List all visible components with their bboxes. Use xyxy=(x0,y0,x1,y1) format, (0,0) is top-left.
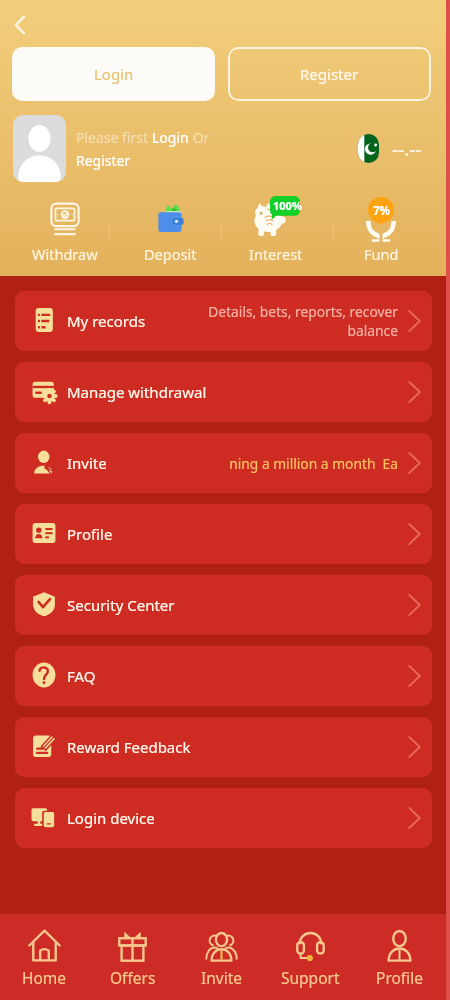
staticText: 7% xyxy=(373,203,390,219)
button[interactable]: Invite xyxy=(15,433,432,493)
button[interactable]: Home xyxy=(0,929,88,1000)
button[interactable]: Reward Feedback xyxy=(15,717,432,777)
staticText: Or xyxy=(189,128,210,147)
button[interactable]: Invite xyxy=(177,929,266,1000)
staticText: Fund xyxy=(364,244,399,264)
staticText: 100% xyxy=(273,198,302,213)
staticText: Interest xyxy=(249,244,303,264)
button[interactable]: Register xyxy=(228,47,431,101)
staticText: Withdraw xyxy=(32,244,98,264)
button[interactable]: Currency xyxy=(358,134,379,163)
button[interactable]: Withdraw xyxy=(24,196,106,264)
button[interactable]: Back xyxy=(6,10,36,40)
staticText: Details, bets, reports, recover balance xyxy=(193,302,398,340)
staticText: My records xyxy=(67,311,146,331)
staticText: Deposit xyxy=(144,244,197,264)
staticText: Login xyxy=(94,64,134,84)
staticText: Manage withdrawal xyxy=(67,382,207,402)
button[interactable]: My records xyxy=(15,291,432,351)
staticText: Offers xyxy=(110,967,156,988)
button[interactable]: 7% xyxy=(340,196,422,264)
staticText: Reward Feedback xyxy=(67,737,191,757)
staticText: Invite xyxy=(201,967,243,988)
button[interactable]: Manage withdrawal xyxy=(15,362,432,422)
staticText: Security Center xyxy=(67,595,175,615)
staticText: Profile xyxy=(67,524,113,544)
button[interactable]: Avatar xyxy=(13,115,66,182)
button[interactable]: Profile xyxy=(15,504,432,564)
button[interactable]: Login xyxy=(12,47,215,101)
staticText: FAQ xyxy=(67,666,96,686)
staticText: Login xyxy=(152,128,189,147)
staticText: ning a million a month Ea xyxy=(226,454,398,473)
staticText: Home xyxy=(22,967,67,988)
staticText: Register xyxy=(300,64,359,84)
button[interactable]: Profile xyxy=(355,929,444,1000)
button[interactable]: FAQ xyxy=(15,646,432,706)
staticText: Register xyxy=(76,151,131,170)
staticText: Login device xyxy=(67,808,155,828)
staticText: Please first xyxy=(76,128,152,147)
button[interactable]: 100% xyxy=(235,196,317,264)
button[interactable]: Login device xyxy=(15,788,432,848)
staticText: Profile xyxy=(376,967,423,988)
staticText: Support xyxy=(281,967,340,988)
button[interactable]: Support xyxy=(266,929,355,1000)
button[interactable]: Security Center xyxy=(15,575,432,635)
button[interactable]: Deposit xyxy=(129,196,211,264)
staticText: --.-- xyxy=(392,136,422,162)
button[interactable]: Offers xyxy=(88,929,177,1000)
staticText: Invite xyxy=(67,453,107,473)
